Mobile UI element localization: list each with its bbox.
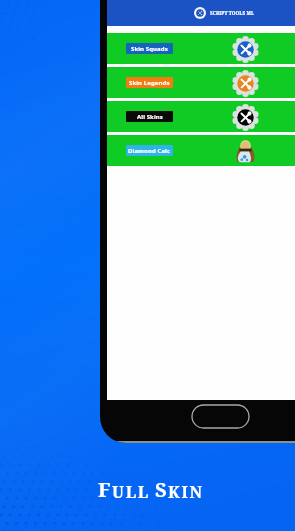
button[interactable]: All Skins [107, 101, 295, 132]
staticText: F [98, 476, 112, 503]
staticText: S [155, 476, 168, 503]
staticText: KIN [168, 481, 204, 503]
staticText: ULL [112, 481, 150, 503]
staticText: Diamond Calc [128, 147, 171, 155]
button[interactable]: Diamond Calc [107, 135, 295, 166]
button[interactable]: Skin Legends [107, 67, 295, 98]
staticText: Skin Legends [129, 79, 170, 87]
staticText: Skin Squads [131, 45, 168, 53]
staticText: SCRIPT TOOLS ML [210, 10, 255, 16]
button[interactable]: Skin Squads [107, 33, 295, 64]
staticText: All Skins [137, 113, 163, 121]
button[interactable]: Home [192, 405, 249, 428]
